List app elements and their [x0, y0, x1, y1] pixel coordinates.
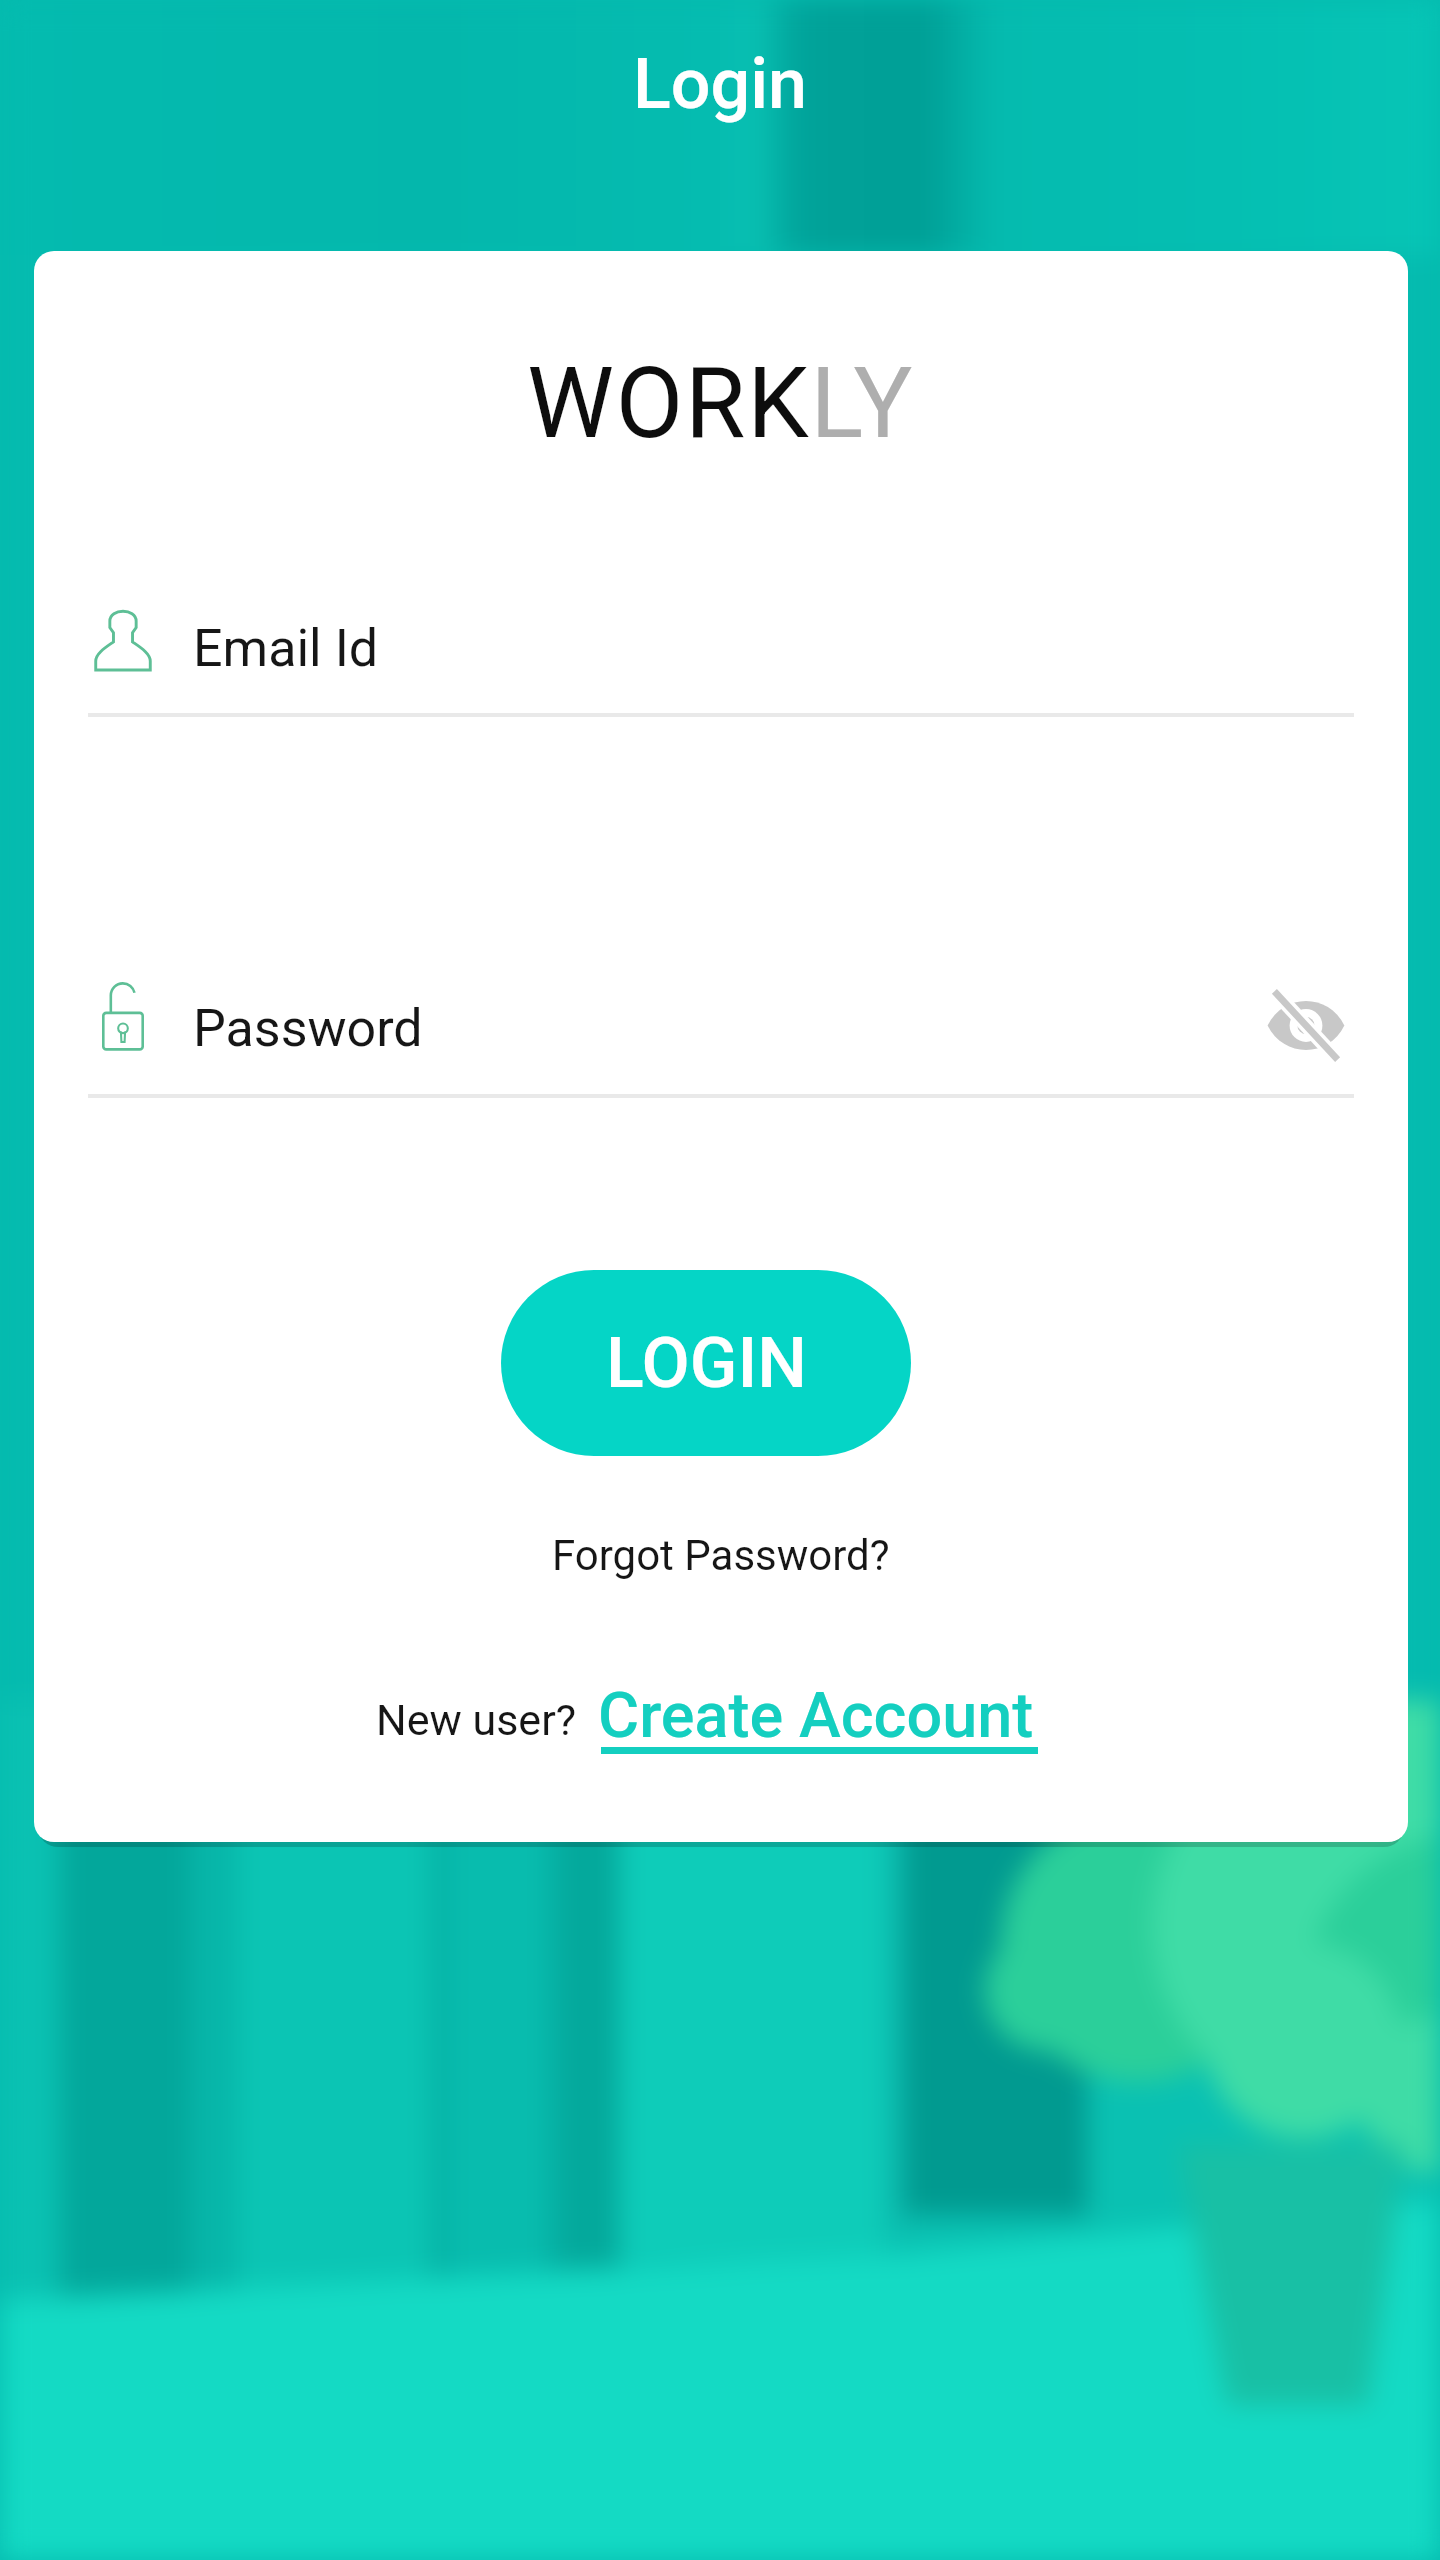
staticText: Email Id — [193, 618, 379, 679]
staticText: Forgot Password? — [552, 1531, 890, 1580]
staticText: WORKLY — [527, 346, 915, 461]
button[interactable]: Forgot Password? — [522, 1517, 920, 1594]
staticText: LOGIN — [606, 1322, 807, 1404]
button[interactable]: LOGIN — [501, 1270, 911, 1456]
button[interactable]: Create Account — [598, 1679, 1034, 1753]
staticText: Login — [633, 43, 808, 125]
button[interactable]: Show password — [1236, 965, 1376, 1085]
staticText: Password — [193, 998, 423, 1059]
staticText: New user? — [376, 1695, 577, 1745]
staticText: Create Account — [598, 1679, 1034, 1753]
